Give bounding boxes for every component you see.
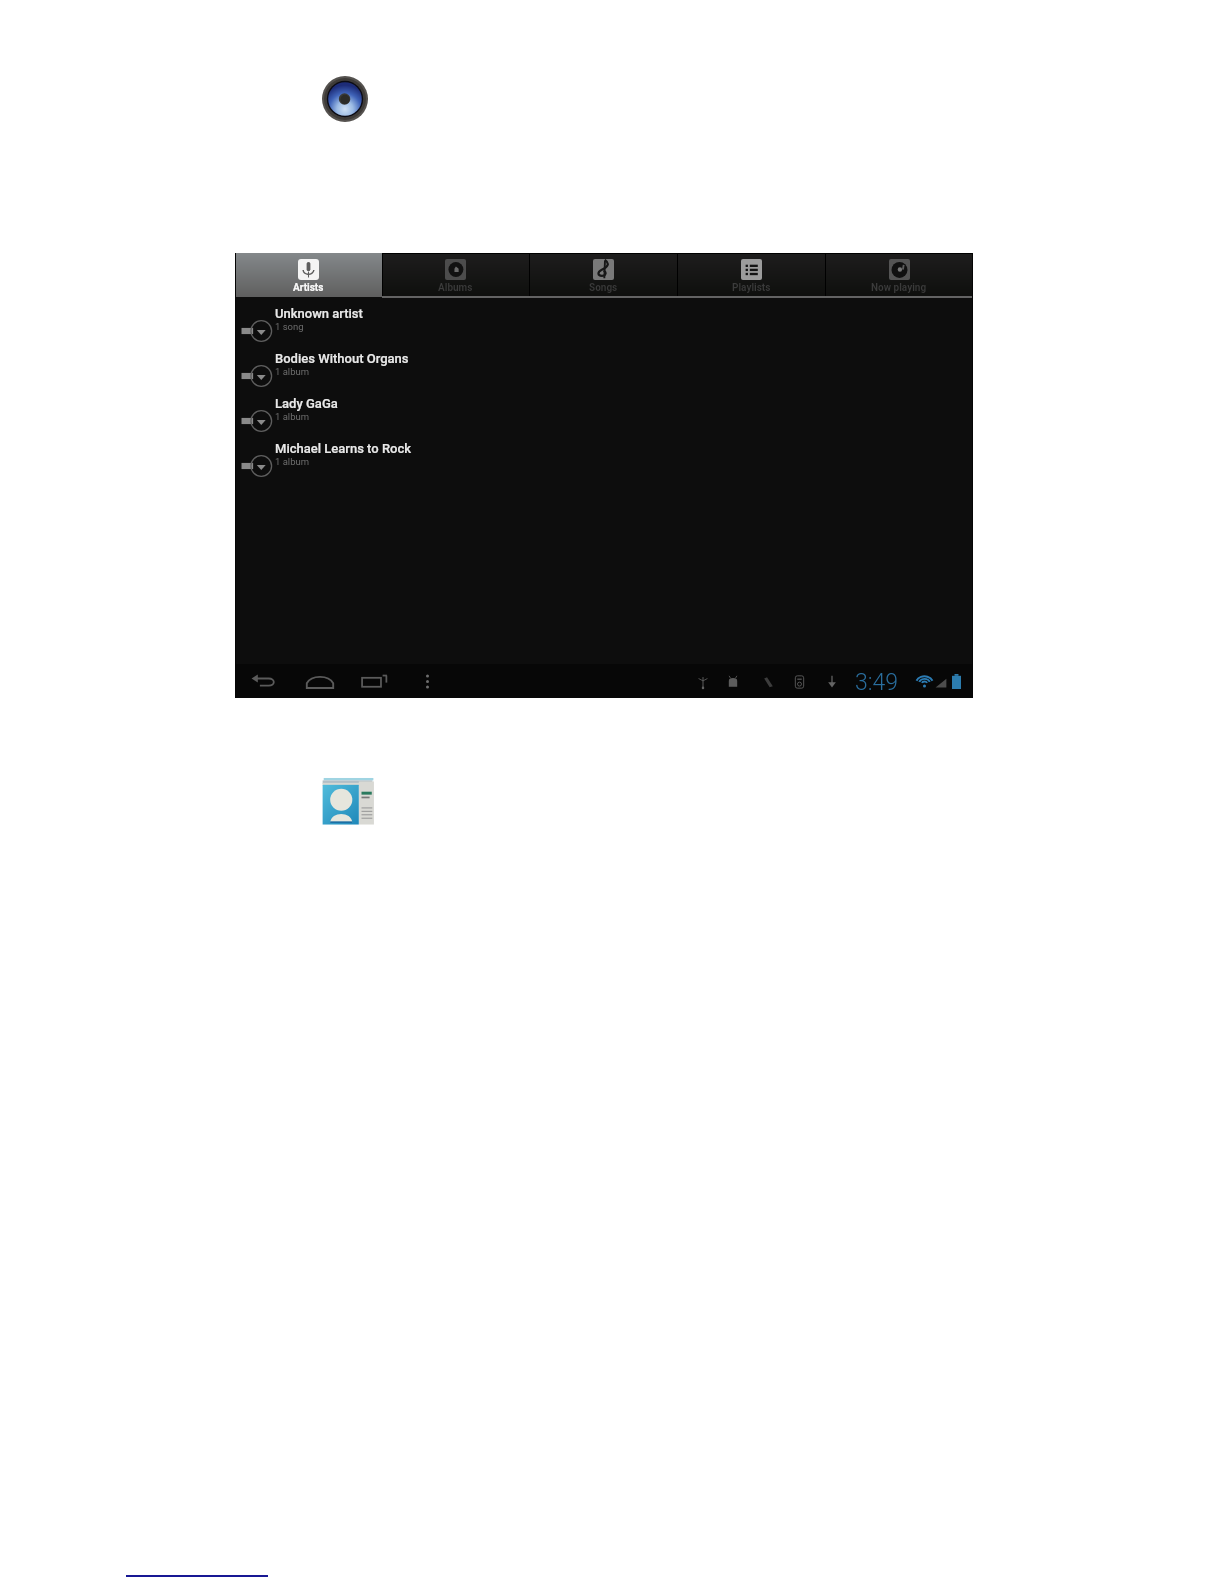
button[interactable]: Albums	[382, 253, 529, 297]
button[interactable]: Expand Unknown artist	[235, 306, 973, 351]
staticText: 3:49	[855, 669, 899, 696]
staticText: 1 album	[275, 411, 310, 422]
button[interactable]: Expand Unknown artist	[241, 320, 272, 342]
staticText: Lady GaGa	[275, 396, 338, 411]
button[interactable]: Recents	[361, 673, 388, 689]
staticText: Songs	[589, 282, 618, 294]
staticText: Bodies Without Organs	[275, 351, 409, 366]
button[interactable]: Expand Lady GaGa	[241, 410, 272, 432]
staticText: 1 album	[275, 456, 310, 467]
button[interactable]: Expand Bodies Without Organs	[235, 351, 973, 396]
button[interactable]: Songs	[529, 253, 677, 297]
staticText: Unknown artist	[275, 306, 363, 321]
button[interactable]: Expand Michael Learns to Rock	[235, 441, 973, 486]
staticText: Michael Learns to Rock	[275, 441, 412, 456]
staticText: Now playing	[871, 282, 927, 294]
staticText: Playlists	[732, 282, 771, 294]
button[interactable]: Home	[305, 673, 335, 690]
button[interactable]: Now playing	[825, 253, 973, 297]
button[interactable]: Expand Michael Learns to Rock	[241, 455, 272, 477]
button[interactable]: Artists	[235, 253, 382, 297]
button[interactable]: Playlists	[677, 253, 825, 297]
staticText: 1 song	[275, 321, 304, 332]
button[interactable]: Expand Lady GaGa	[235, 396, 973, 441]
button[interactable]: Expand Bodies Without Organs	[241, 365, 272, 387]
button[interactable]: More options	[425, 674, 430, 689]
staticText: Albums	[438, 282, 473, 294]
staticText: Artists	[293, 282, 324, 294]
staticText: 1 album	[275, 366, 310, 377]
button[interactable]: Back	[250, 674, 276, 689]
